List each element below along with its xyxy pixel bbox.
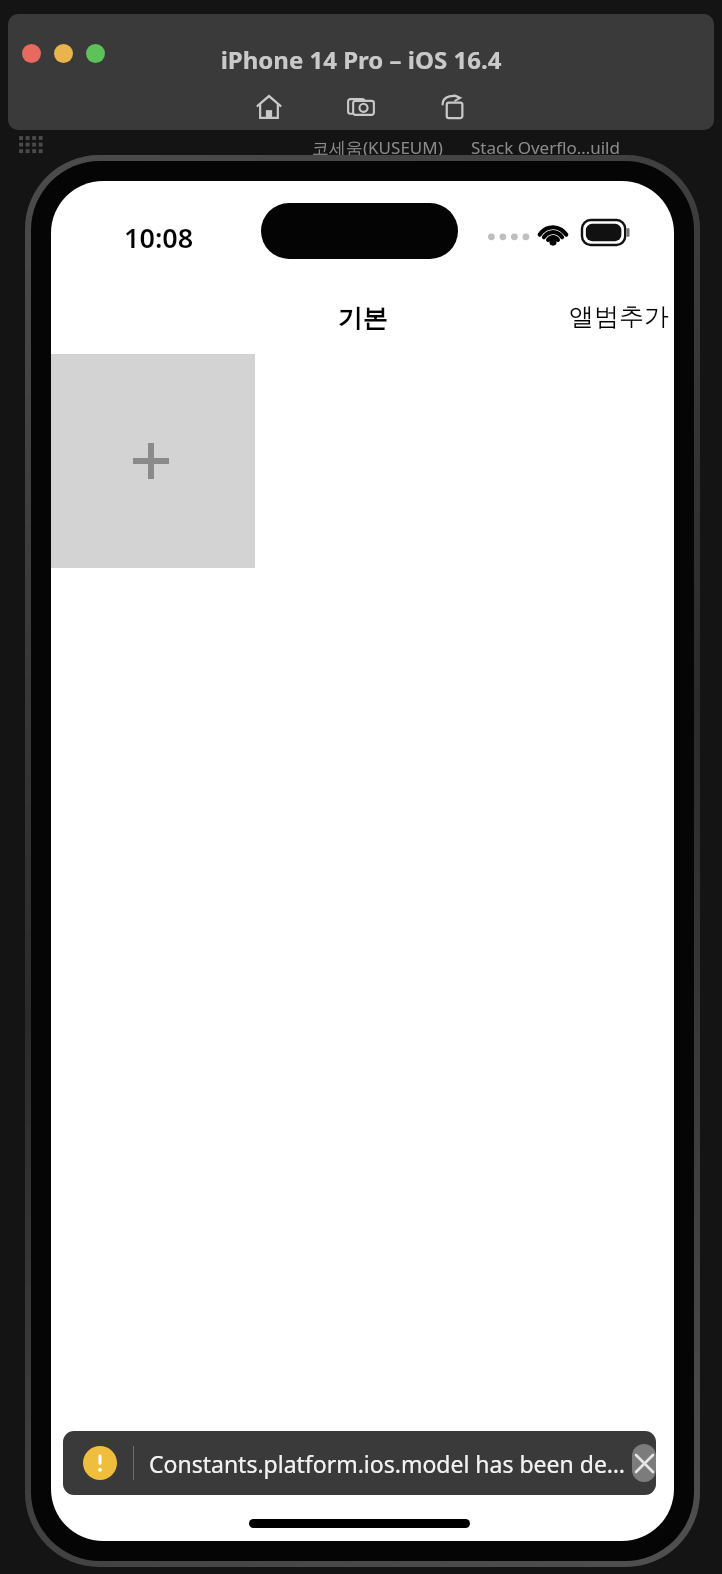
button[interactable]: Rotate bbox=[434, 88, 472, 126]
staticText: 10:08 bbox=[124, 219, 194, 256]
button[interactable]: Screenshot bbox=[342, 88, 380, 126]
staticText: 코세움(KUSEUM) bbox=[312, 136, 443, 159]
button[interactable]: Home bbox=[250, 88, 288, 126]
button[interactable]: Add photo bbox=[51, 354, 255, 568]
button[interactable]: Zoom bbox=[86, 44, 105, 63]
button[interactable]: Minimize bbox=[54, 44, 73, 63]
staticText: Stack Overflo…uild bbox=[471, 136, 620, 159]
button[interactable]: Constants.platform.ios.model has been de… bbox=[63, 1431, 656, 1495]
staticText: 기본 bbox=[51, 303, 674, 334]
staticText: Constants.platform.ios.model has been de… bbox=[149, 1448, 626, 1479]
button[interactable]: 앨범추가 bbox=[563, 295, 674, 338]
button[interactable]: Close bbox=[22, 44, 41, 63]
button[interactable]: Dismiss bbox=[632, 1444, 656, 1482]
staticText: 앨범추가 bbox=[569, 301, 669, 332]
staticText: iPhone 14 Pro – iOS 16.4 bbox=[8, 43, 714, 76]
